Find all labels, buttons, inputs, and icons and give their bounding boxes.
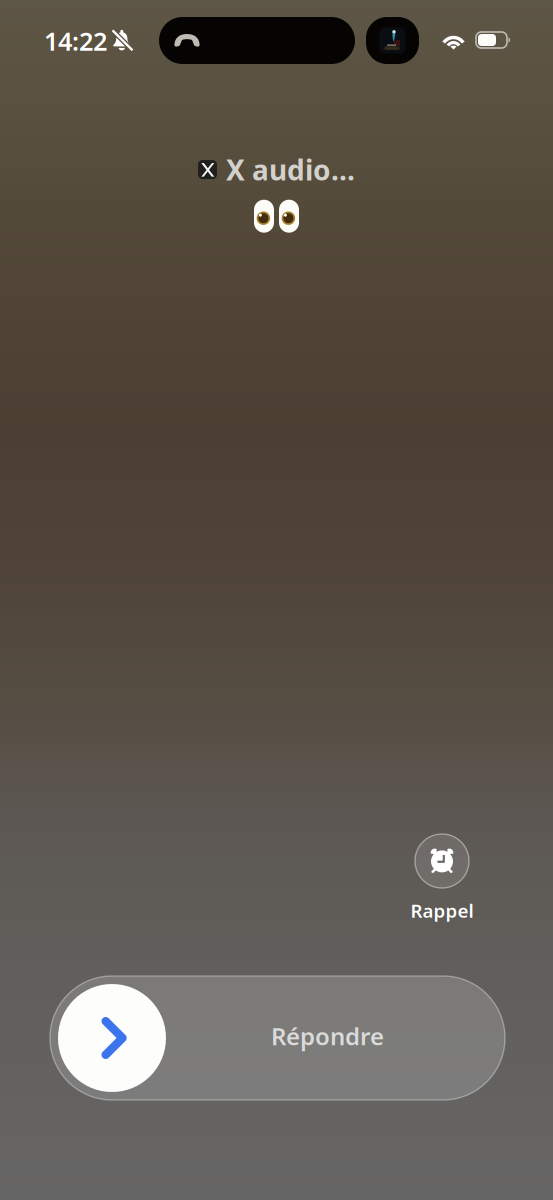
button[interactable]: Répondre xyxy=(50,976,505,1100)
staticText: 14:22 xyxy=(44,24,107,58)
staticText: Rappel xyxy=(410,898,473,923)
staticText: Répondre xyxy=(271,1020,384,1052)
button[interactable]: Rappel xyxy=(394,834,490,923)
staticText: X audio... xyxy=(226,151,355,188)
